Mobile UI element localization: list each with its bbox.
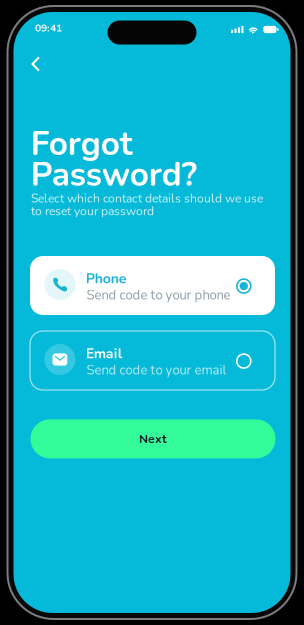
staticText: Email [86,344,123,363]
staticText: Send code to your email [87,361,227,379]
button[interactable]: Email [30,331,275,390]
button[interactable]: Next [30,419,275,458]
staticText: Forgot [31,121,133,167]
staticText: 09:41 [35,21,62,35]
button[interactable]: Phone [30,256,275,315]
staticText: Send code to your phone [87,286,231,304]
staticText: Next [139,431,167,447]
staticText: Password? [31,152,197,197]
staticText: to reset your password [31,203,154,219]
staticText: Phone [86,269,127,288]
staticText: Select which contact details should we u… [31,190,263,207]
button[interactable]: Back [20,49,50,79]
